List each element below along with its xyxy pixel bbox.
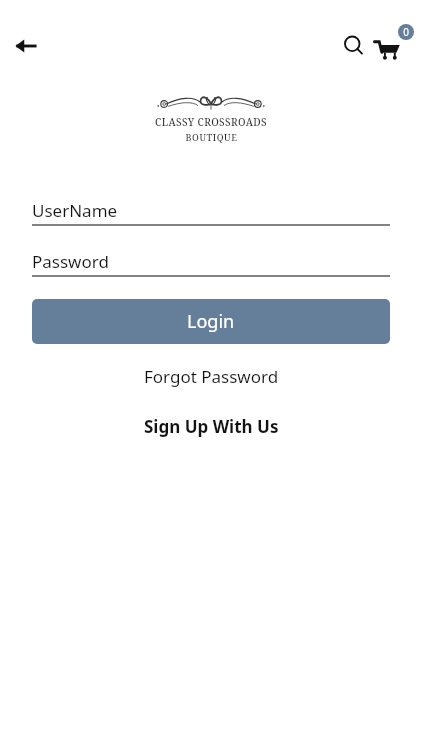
staticText: Login [187, 309, 235, 334]
staticText: BOUTIQUE [185, 131, 238, 143]
button[interactable]: Password [32, 247, 390, 275]
staticText: Forgot Password [144, 365, 279, 388]
button[interactable]: Forgot Password [32, 359, 390, 394]
staticText: Password [32, 250, 109, 273]
staticText: UserName [32, 199, 118, 222]
staticText: Sign Up With Us [144, 415, 279, 438]
button[interactable]: Login [32, 299, 390, 344]
button[interactable]: Sign Up With Us [32, 409, 390, 444]
button[interactable]: UserName [32, 196, 390, 224]
staticText: CLASSY CROSSROADS [155, 115, 267, 129]
staticText: 0 [403, 25, 409, 39]
button[interactable]: Cart, 0 items [374, 24, 414, 64]
button[interactable]: Back [8, 28, 44, 64]
button[interactable]: Search [336, 28, 372, 64]
